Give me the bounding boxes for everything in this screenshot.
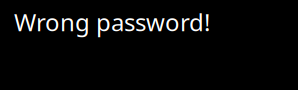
staticText: Wrong password! xyxy=(14,6,210,38)
